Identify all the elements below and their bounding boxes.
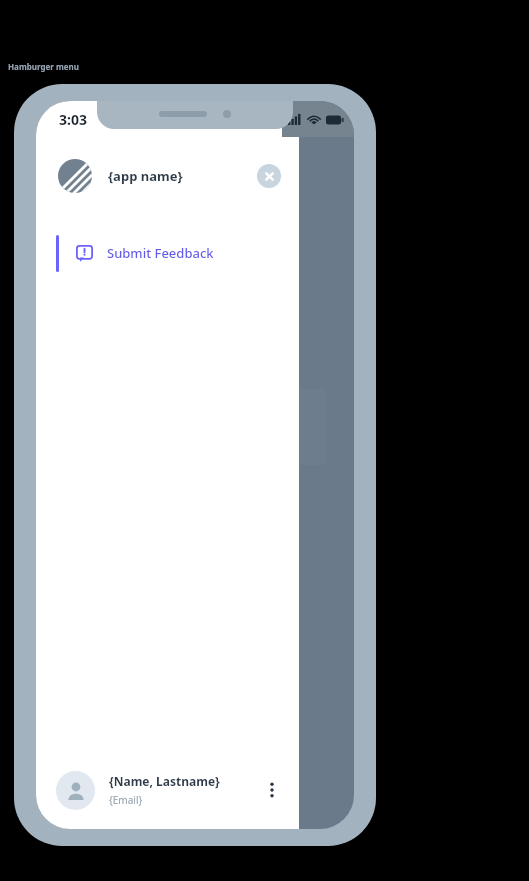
button[interactable]: {Name, Lastname} [36, 751, 299, 829]
button[interactable]: Submit Feedback [36, 233, 299, 273]
button[interactable]: Close [257, 164, 281, 188]
button[interactable]: More options [257, 775, 287, 805]
staticText: {app name} [108, 167, 183, 185]
button[interactable]: Product [158, 389, 326, 465]
staticText: Submit Feedback [107, 244, 214, 262]
button[interactable]: Map [176, 771, 195, 804]
staticText: Hamburger menu [8, 61, 79, 72]
staticText: 3:03 [59, 110, 87, 129]
staticText: {Email} [109, 793, 143, 807]
staticText: {Name, Lastname} [109, 773, 220, 789]
